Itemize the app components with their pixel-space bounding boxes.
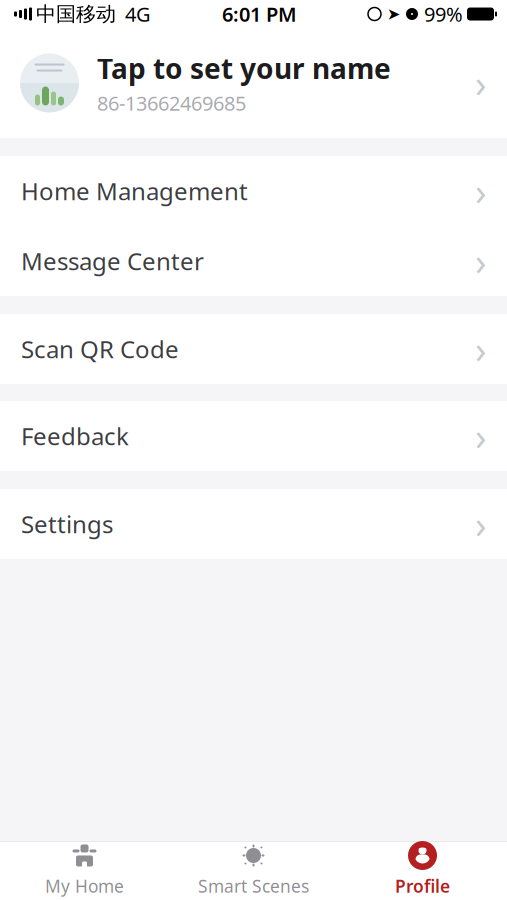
staticText: Profile (395, 874, 450, 897)
staticText: Home Management (21, 175, 248, 207)
staticText: 4G (125, 1, 151, 27)
button[interactable]: Profile (338, 842, 507, 900)
staticText: 99% (424, 1, 463, 27)
button[interactable]: My Home (0, 842, 169, 900)
staticText: › (475, 58, 487, 108)
staticText: 中国移动 (36, 2, 116, 26)
staticText: › (475, 411, 487, 461)
staticText: 86-13662469685 (97, 90, 246, 116)
button[interactable]: Settings (0, 489, 507, 559)
staticText: › (475, 324, 487, 374)
staticText: Tap to set your name (97, 50, 391, 87)
button[interactable]: Scan QR Code (0, 314, 507, 384)
staticText: Settings (21, 508, 113, 540)
staticText: My Home (45, 874, 124, 897)
staticText: Message Center (21, 245, 204, 277)
staticText: ➤ (387, 5, 400, 23)
staticText: › (475, 236, 487, 286)
staticText: › (475, 499, 487, 549)
staticText: Feedback (21, 420, 129, 452)
button[interactable]: Tap to set your name (0, 28, 507, 138)
button[interactable]: Message Center (0, 226, 507, 296)
staticText: › (475, 166, 487, 216)
button[interactable]: Home Management (0, 156, 507, 226)
staticText: Scan QR Code (21, 333, 179, 365)
staticText: Smart Scenes (198, 874, 309, 897)
button[interactable]: Feedback (0, 401, 507, 471)
button[interactable]: Smart Scenes (169, 842, 338, 900)
staticText: 6:01 PM (222, 1, 297, 27)
